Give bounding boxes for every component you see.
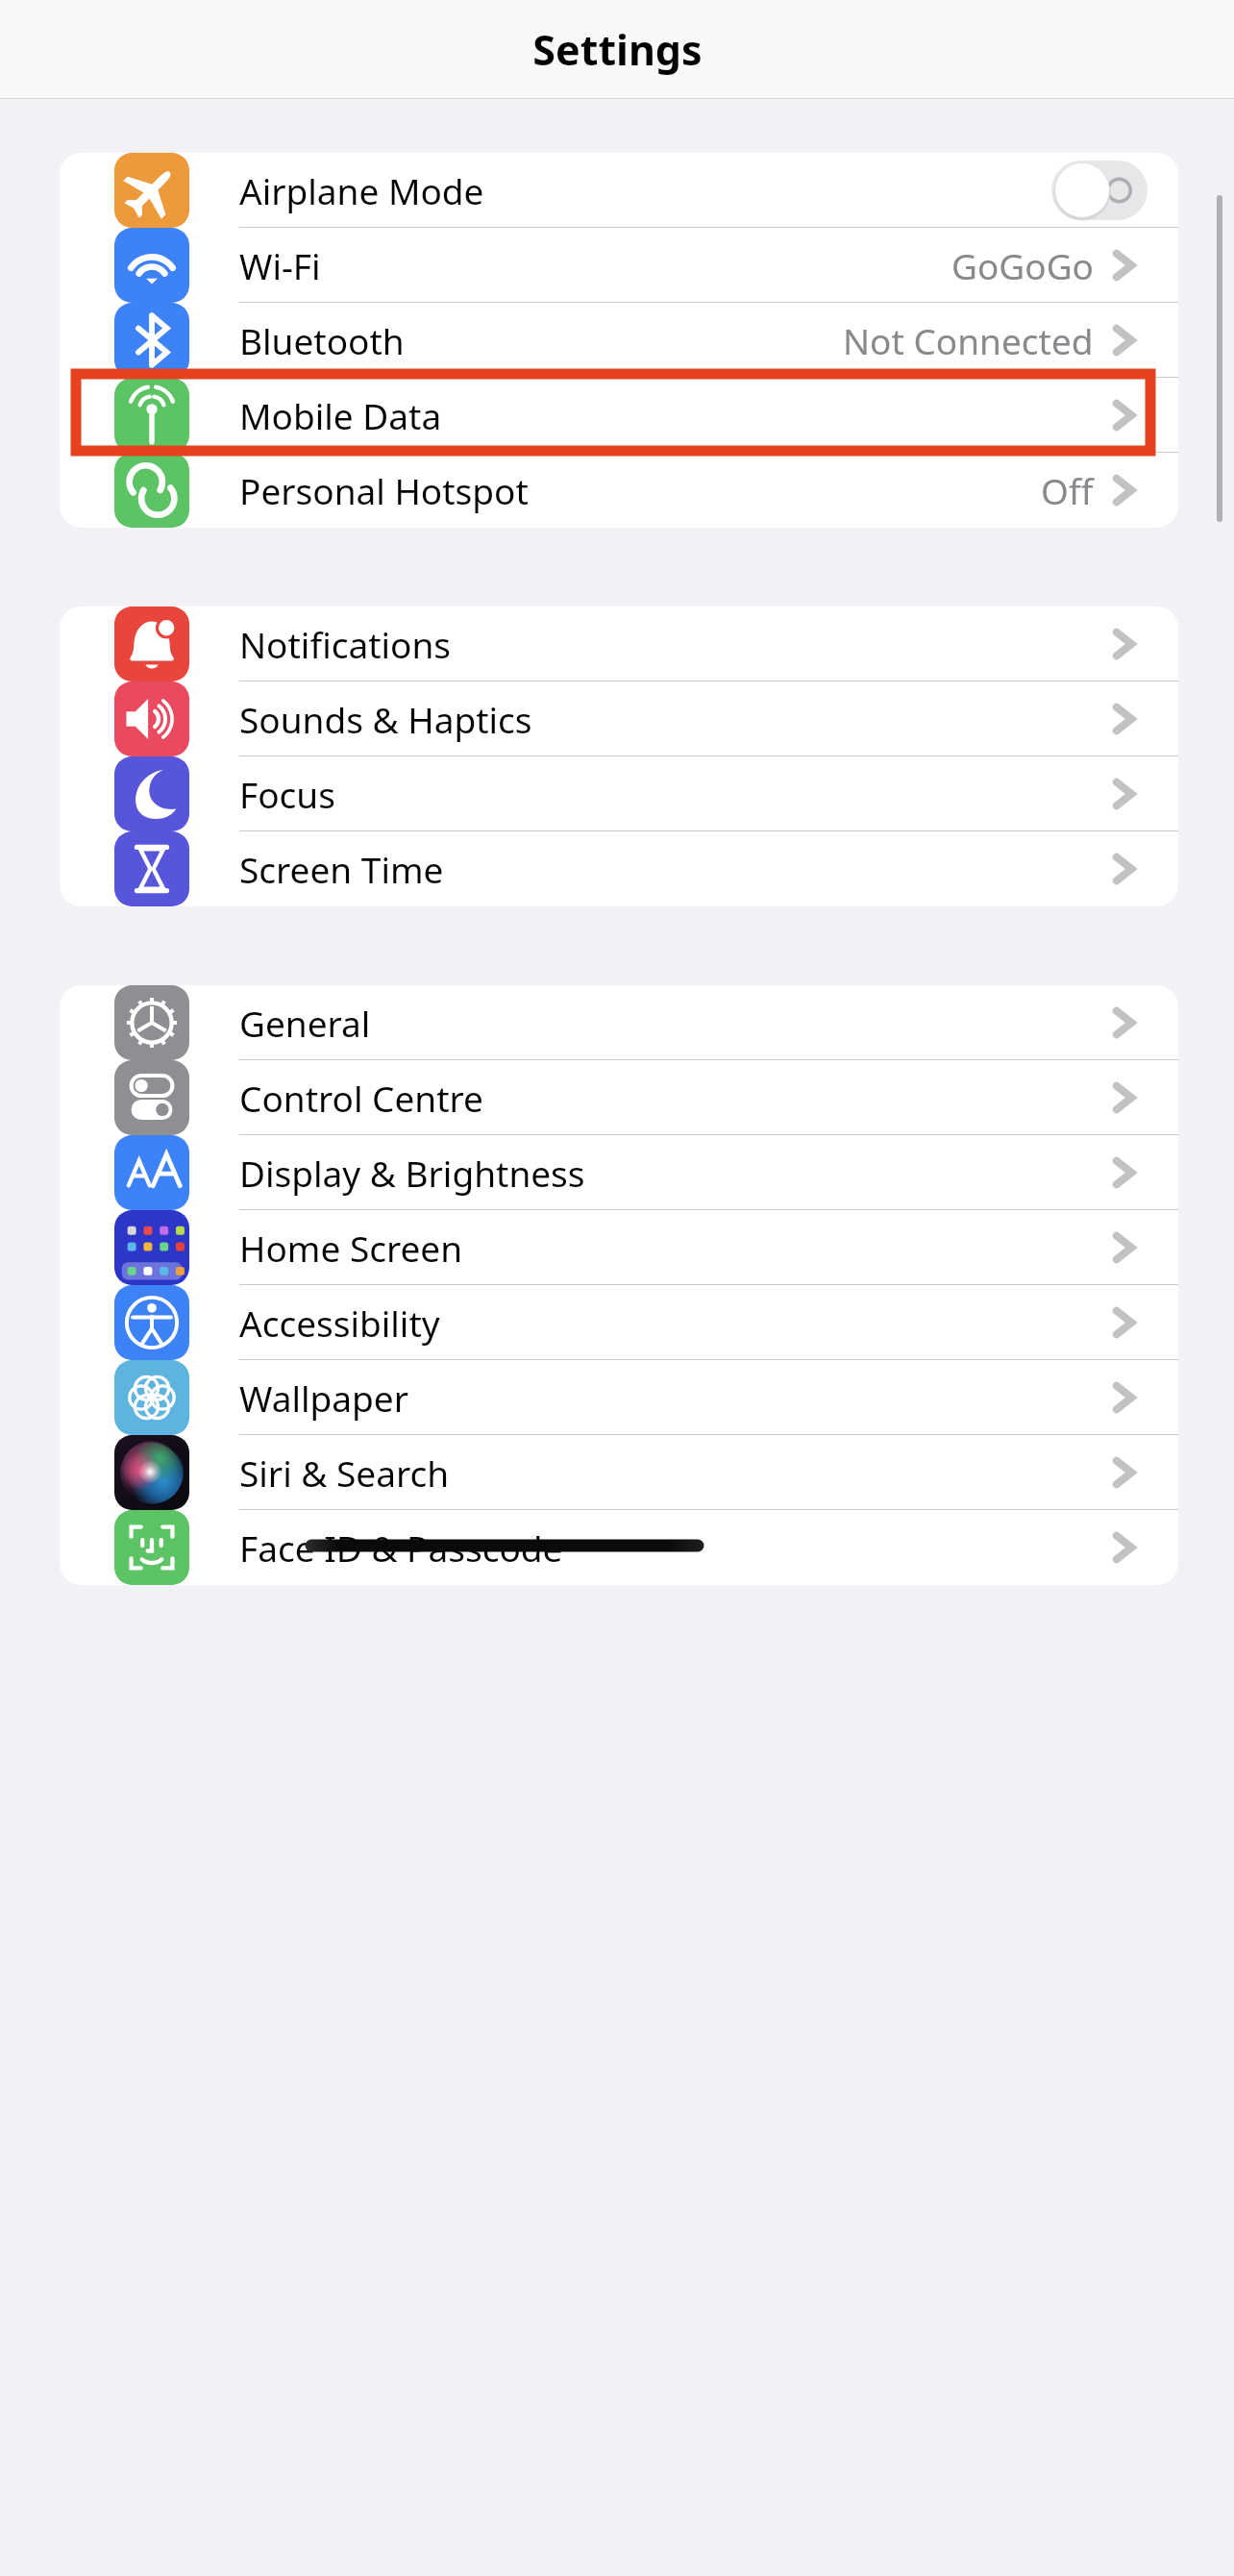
staticText: Face ID & Passcode xyxy=(239,1523,563,1572)
staticText: Off xyxy=(1041,466,1094,514)
staticText: Personal Hotspot xyxy=(239,466,529,514)
button[interactable]: Screen Time xyxy=(60,831,1178,906)
button[interactable]: Notifications xyxy=(60,607,1178,681)
staticText: General xyxy=(239,999,371,1047)
button[interactable]: Focus xyxy=(60,756,1178,831)
button[interactable]: Control Centre xyxy=(60,1060,1178,1135)
staticText: Siri & Search xyxy=(239,1449,450,1497)
staticText: Bluetooth xyxy=(239,316,405,364)
staticText: Mobile Data xyxy=(239,391,442,439)
button[interactable]: Airplane Mode xyxy=(60,153,1178,228)
staticText: Airplane Mode xyxy=(239,166,484,214)
staticText: Focus xyxy=(239,770,335,818)
staticText: GoGoGo xyxy=(951,241,1094,289)
button[interactable]: General xyxy=(60,985,1178,1060)
staticText: Wallpaper xyxy=(239,1374,408,1422)
staticText: Control Centre xyxy=(239,1074,483,1122)
button[interactable]: Accessibility xyxy=(60,1285,1178,1360)
button[interactable]: Sounds & Haptics xyxy=(60,681,1178,756)
staticText: Sounds & Haptics xyxy=(239,695,532,743)
staticText: Wi-Fi xyxy=(239,241,321,289)
staticText: Home Screen xyxy=(239,1224,463,1272)
staticText: Notifications xyxy=(239,620,452,668)
button[interactable]: Wallpaper xyxy=(60,1360,1178,1435)
button[interactable]: Display & Brightness xyxy=(60,1135,1178,1210)
staticText: Display & Brightness xyxy=(239,1149,585,1197)
button[interactable]: Personal Hotspot xyxy=(60,453,1178,528)
staticText: Not Connected xyxy=(843,316,1094,364)
staticText: Accessibility xyxy=(239,1299,440,1347)
button[interactable]: Bluetooth xyxy=(60,303,1178,378)
staticText: Screen Time xyxy=(239,845,444,893)
button[interactable]: Siri & Search xyxy=(60,1435,1178,1510)
button[interactable]: Mobile Data xyxy=(60,378,1178,453)
button[interactable]: Face ID & Passcode xyxy=(60,1510,1178,1585)
staticText: Settings xyxy=(532,21,703,78)
button[interactable]: Home Screen xyxy=(60,1210,1178,1285)
button[interactable]: Wi-Fi xyxy=(60,228,1178,303)
